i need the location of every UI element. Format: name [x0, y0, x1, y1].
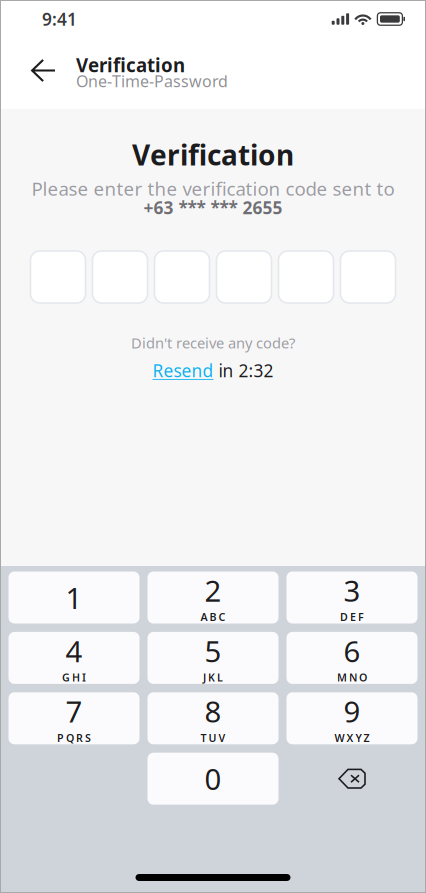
staticText: 9 [343, 692, 360, 731]
staticText: 9:41 [42, 7, 77, 30]
button[interactable]: 2 [147, 571, 278, 623]
staticText: 8 [204, 692, 221, 731]
button[interactable]: Back [25, 53, 61, 93]
staticText: in 2:32 [218, 359, 273, 382]
button[interactable]: 5 [147, 632, 278, 684]
button[interactable]: Resend [152, 359, 213, 382]
staticText: DEF [340, 610, 364, 624]
staticText: Didn't receive any code? [131, 333, 295, 352]
button[interactable]: 3 [286, 571, 417, 623]
staticText: 5 [204, 631, 221, 670]
staticText: MNO [337, 670, 367, 684]
staticText: PQRS [57, 731, 91, 745]
button[interactable]: 0 [147, 753, 278, 805]
staticText: 2 [204, 571, 221, 610]
staticText: GHI [62, 670, 86, 684]
staticText: Please enter the verification code sent … [31, 176, 394, 201]
button[interactable]: Delete [286, 753, 417, 805]
staticText: TUV [200, 731, 225, 745]
staticText: JKL [203, 670, 223, 684]
staticText: Verification [132, 136, 294, 173]
staticText: Verification [76, 52, 185, 77]
staticText: 7 [65, 692, 82, 731]
staticText: 4 [65, 631, 82, 670]
button[interactable]: 1 [8, 571, 139, 623]
staticText: WXYZ [334, 731, 369, 745]
staticText: ABC [200, 610, 225, 624]
staticText: +63 *** *** 2655 [143, 196, 282, 219]
button[interactable]: 4 [8, 632, 139, 684]
button[interactable]: 8 [147, 692, 278, 744]
staticText: Resend [152, 359, 213, 382]
staticText: 1 [65, 578, 82, 617]
button[interactable]: 7 [8, 692, 139, 744]
button[interactable]: 9 [286, 692, 417, 744]
staticText: One-Time-Password [76, 70, 228, 92]
staticText: 6 [343, 631, 360, 670]
button[interactable]: 6 [286, 632, 417, 684]
staticText: 0 [204, 759, 221, 798]
staticText: 3 [343, 571, 360, 610]
